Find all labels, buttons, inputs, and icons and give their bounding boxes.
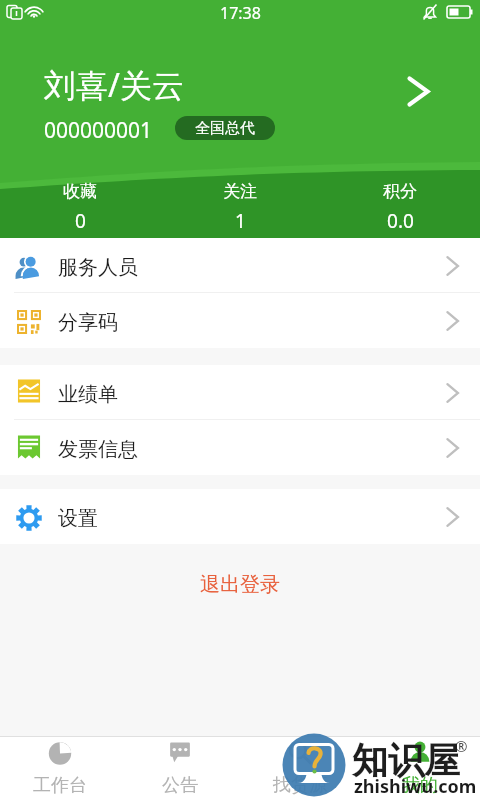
staticText: 公告 [162, 774, 198, 797]
button[interactable]: 服务人员 [0, 238, 480, 293]
staticText: 000000001 [44, 116, 153, 145]
button[interactable]: 业绩单 [0, 365, 480, 420]
staticText: 0.0 [387, 208, 414, 234]
staticText: 1 [235, 208, 246, 234]
staticText: 分享码 [58, 310, 118, 335]
staticText: 找货源 [273, 774, 327, 797]
button[interactable]: 分享码 [0, 293, 480, 348]
other: 公告 [167, 740, 193, 766]
button[interactable]: 收藏 [0, 170, 160, 245]
button[interactable]: 刘喜/关云 [0, 51, 480, 156]
staticText: 积分 [383, 181, 417, 202]
staticText: 发票信息 [58, 437, 138, 462]
staticText: 17:38 [220, 2, 261, 24]
button[interactable]: 设置 [0, 489, 480, 544]
button[interactable]: 我的 [360, 736, 480, 800]
button[interactable]: 发票信息 [0, 420, 480, 475]
other: 工作台 [47, 740, 73, 766]
button[interactable]: 退出登录 [160, 566, 320, 611]
other: 我的 [407, 740, 433, 766]
staticText: 0 [75, 208, 86, 234]
button[interactable]: 关注 [160, 170, 320, 245]
other: Profile detail [407, 76, 430, 107]
staticText: ® [455, 736, 468, 756]
button[interactable]: 积分 [320, 170, 480, 245]
staticText: 刘喜/关云 [44, 63, 184, 107]
staticText: 全国总代 [195, 119, 255, 138]
button[interactable]: 公告 [120, 736, 240, 800]
button[interactable]: 工作台 [0, 736, 120, 800]
staticText: zhishiwu.com [354, 774, 477, 799]
staticText: 设置 [58, 506, 98, 531]
staticText: 业绩单 [58, 382, 118, 407]
staticText: 退出登录 [200, 572, 280, 597]
staticText: 工作台 [33, 774, 87, 797]
button[interactable]: 找货源 [240, 736, 360, 800]
staticText: 知识屋 [352, 738, 460, 783]
staticText: 服务人员 [58, 255, 138, 280]
staticText: 收藏 [63, 181, 97, 202]
other: 找货源 [287, 740, 313, 766]
staticText: 关注 [223, 181, 257, 202]
staticText: 我的 [402, 774, 438, 797]
